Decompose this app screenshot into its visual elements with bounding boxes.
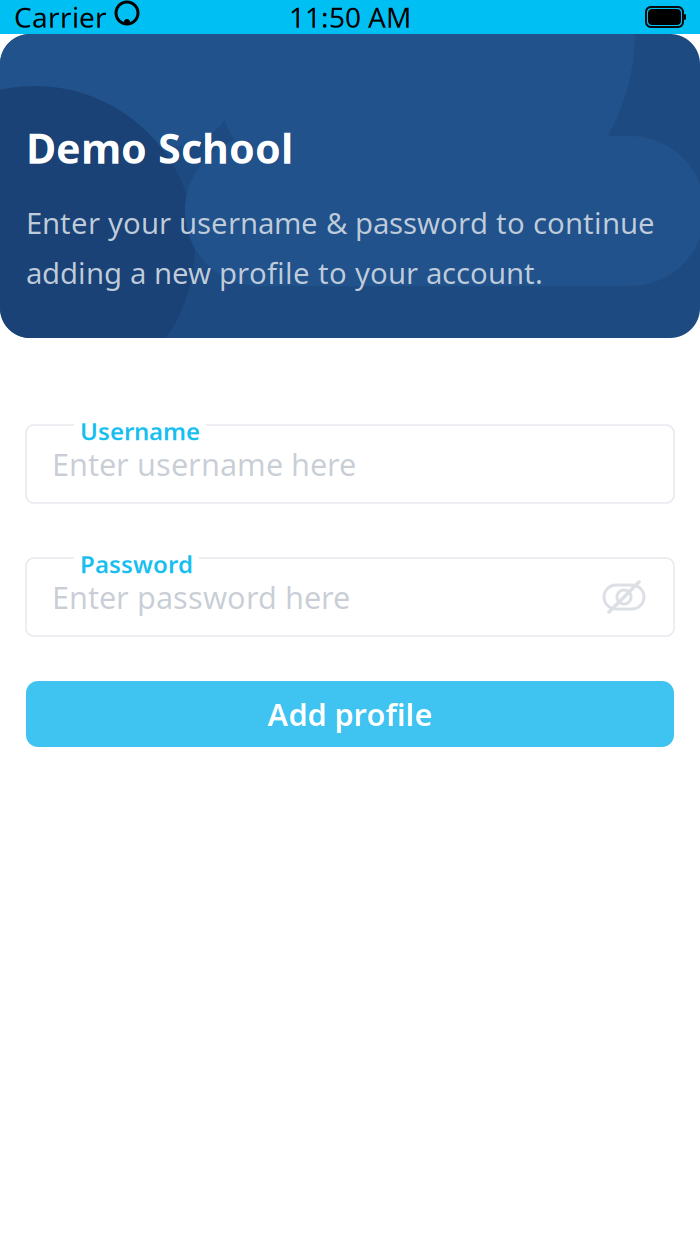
staticText: Carrier xyxy=(14,0,107,36)
button[interactable]: Enter password here xyxy=(26,548,674,636)
staticText: Enter password here xyxy=(52,577,350,617)
staticText: Password xyxy=(80,548,193,580)
button[interactable]: Enter username here xyxy=(26,415,674,503)
staticText: Enter your username & password to contin… xyxy=(26,203,655,292)
staticText: Demo School xyxy=(26,120,293,175)
staticText: 11:50 AM xyxy=(289,0,411,36)
staticText: Username xyxy=(80,415,200,447)
staticText: Add profile xyxy=(267,694,432,734)
button[interactable]: Add profile xyxy=(26,681,674,747)
staticText: Enter username here xyxy=(52,444,356,484)
